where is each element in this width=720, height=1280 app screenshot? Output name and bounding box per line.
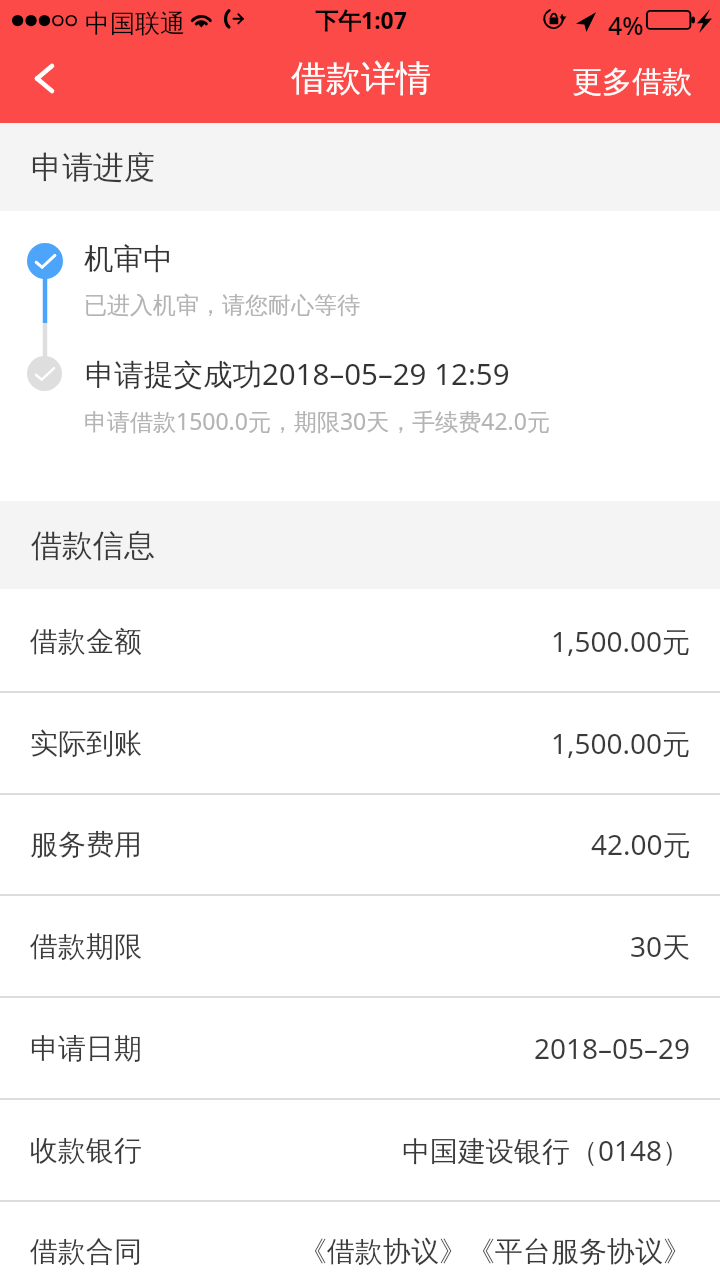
staticText: 1,500.00元 bbox=[551, 724, 691, 762]
staticText: 4% bbox=[608, 8, 644, 42]
staticText: 收款银行 bbox=[30, 1133, 142, 1168]
button[interactable]: 收款银行 bbox=[0, 1100, 720, 1202]
staticText: 已进入机审，请您耐心等待 bbox=[84, 291, 360, 320]
staticText: 实际到账 bbox=[30, 726, 142, 761]
staticText: 借款信息 bbox=[31, 526, 155, 565]
staticText: 机审中 bbox=[84, 241, 173, 278]
button[interactable]: Back bbox=[0, 40, 88, 123]
staticText: 1,500.00元 bbox=[551, 622, 691, 660]
staticText: 2018–05–29 bbox=[534, 1029, 691, 1067]
button[interactable]: 更多借款 bbox=[572, 40, 692, 123]
button[interactable]: 借款金额 bbox=[0, 591, 720, 693]
staticText: 《借款协议》《平台服务协议》 bbox=[299, 1234, 691, 1269]
staticText: 借款金额 bbox=[30, 624, 142, 659]
button[interactable]: 实际到账 bbox=[0, 693, 720, 795]
staticText: 30天 bbox=[630, 927, 691, 965]
staticText: 中国联通 bbox=[85, 8, 185, 39]
staticText: 申请日期 bbox=[30, 1031, 142, 1066]
staticText: 借款期限 bbox=[30, 929, 142, 964]
staticText: 下午1:07 bbox=[315, 4, 407, 35]
staticText: 申请借款1500.0元，期限30天，手续费42.0元 bbox=[84, 405, 550, 436]
staticText: 申请提交成功2018–05–29 12:59 bbox=[85, 353, 510, 393]
button[interactable]: 申请日期 bbox=[0, 998, 720, 1100]
staticText: 借款合同 bbox=[30, 1234, 142, 1269]
button[interactable]: 服务费用 bbox=[0, 794, 720, 896]
staticText: 更多借款 bbox=[572, 63, 692, 101]
staticText: 42.00元 bbox=[591, 825, 691, 863]
staticText: 中国建设银行（0148） bbox=[402, 1131, 691, 1169]
button[interactable]: 借款期限 bbox=[0, 896, 720, 998]
staticText: 借款详情 bbox=[291, 56, 431, 100]
staticText: 服务费用 bbox=[30, 827, 142, 862]
button[interactable]: 借款合同 bbox=[0, 1201, 720, 1280]
staticText: 申请进度 bbox=[31, 148, 155, 187]
